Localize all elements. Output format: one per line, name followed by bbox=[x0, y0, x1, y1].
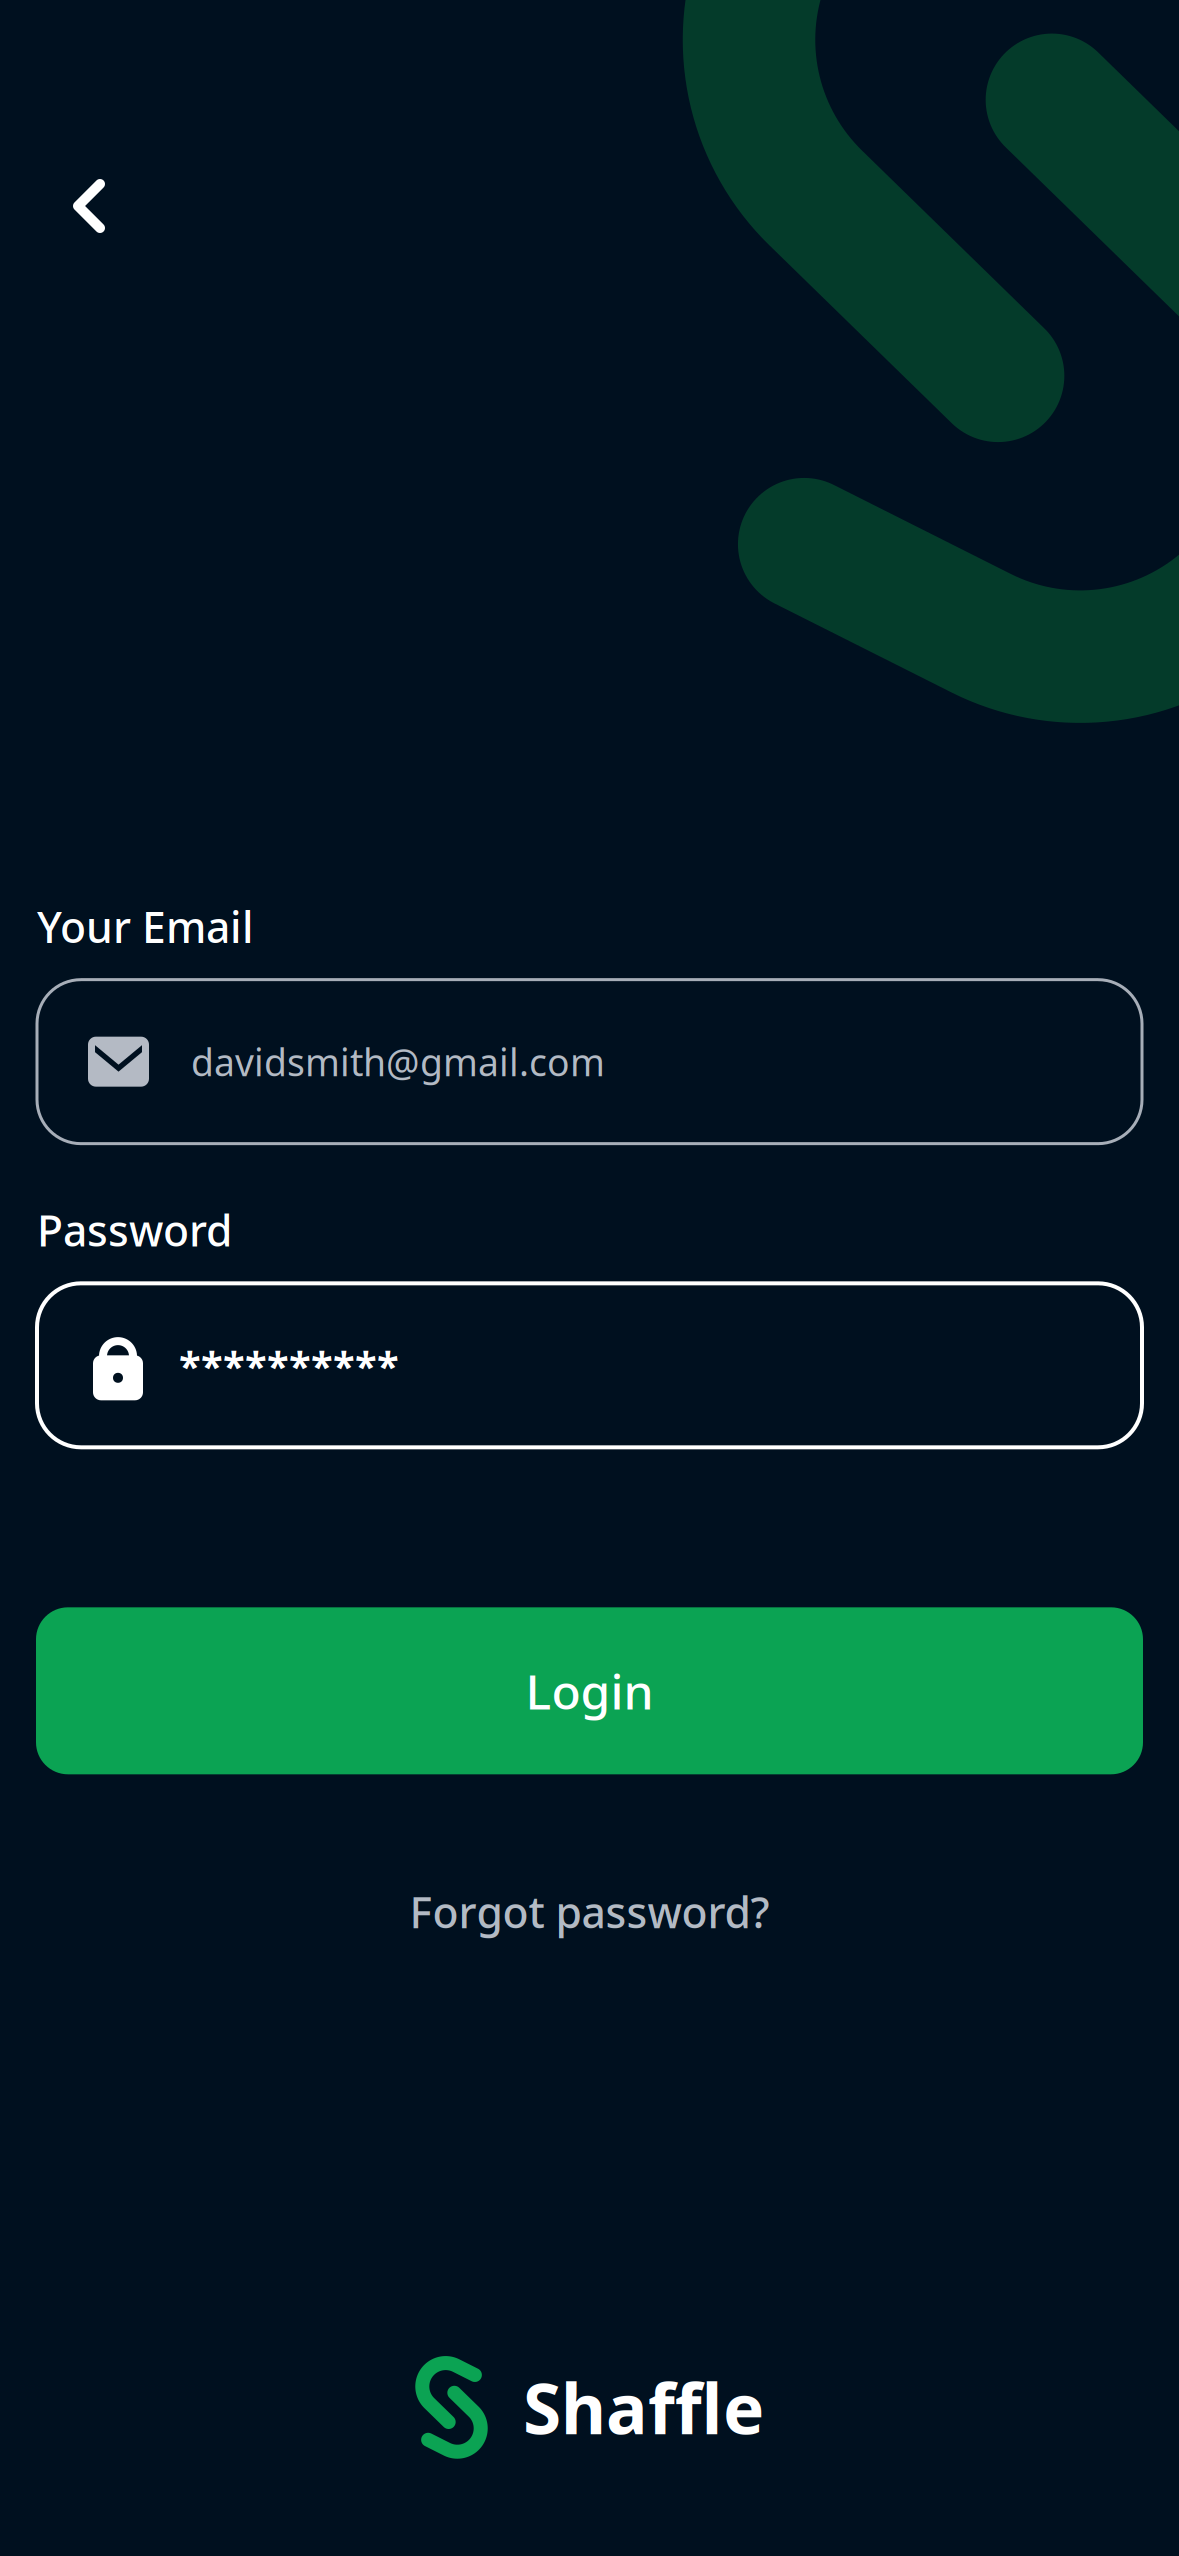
staticText: Forgot password? bbox=[409, 1883, 769, 1940]
staticText: Login bbox=[525, 1659, 653, 1723]
button[interactable]: Back bbox=[0, 0, 146, 274]
staticText: davidsmith@gmail.com bbox=[191, 1037, 605, 1086]
staticText: Password bbox=[37, 1202, 232, 1258]
staticText: Your Email bbox=[37, 898, 254, 955]
button[interactable]: Login bbox=[0, 1607, 1179, 1774]
button[interactable]: Forgot password? bbox=[0, 1869, 1179, 1954]
staticText: Shaffle bbox=[523, 2361, 764, 2453]
staticText: ********** bbox=[179, 1339, 399, 1392]
